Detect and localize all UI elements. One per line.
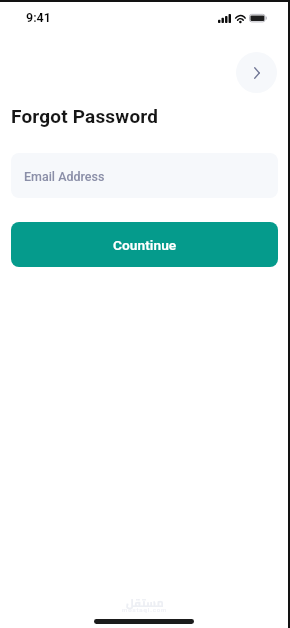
button[interactable]: Back bbox=[236, 52, 277, 93]
button[interactable]: Email Address bbox=[11, 153, 278, 198]
button[interactable]: Countinue bbox=[11, 222, 278, 267]
staticText: mostaql.com bbox=[122, 606, 168, 613]
staticText: Email Address bbox=[24, 169, 105, 184]
staticText: Forgot Password bbox=[11, 105, 159, 127]
staticText: مستقل bbox=[126, 593, 164, 614]
staticText: 9:41 bbox=[26, 10, 51, 25]
staticText: Countinue bbox=[113, 237, 177, 253]
